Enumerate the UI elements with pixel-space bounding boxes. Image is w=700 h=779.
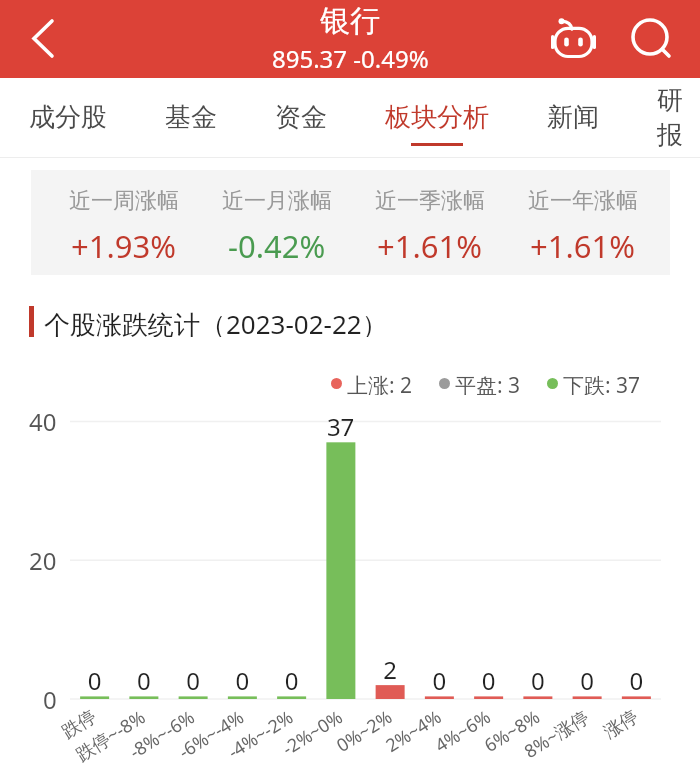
button[interactable]: 成分股 [0,78,136,157]
staticText: 成分股 [29,101,107,134]
button[interactable]: Back [0,0,78,78]
button[interactable]: 基金 [136,78,246,157]
staticText: 资金 [275,101,327,134]
button[interactable]: Search [620,7,680,67]
button[interactable]: 近一季涨幅 [353,170,506,275]
staticText: 上涨: 2 [347,371,413,395]
staticText: 近一季涨幅 [375,187,485,215]
staticText: +1.61% [530,225,635,267]
button[interactable]: 资金 [246,78,356,157]
staticText: 个股涨跌统计（2023-02-22） [44,306,388,337]
button[interactable]: 近一月涨幅 [200,170,353,275]
staticText: 近一周涨幅 [69,187,179,215]
button[interactable]: 研报 [628,78,700,157]
staticText: 近一月涨幅 [222,187,332,215]
staticText: 895.37 -0.49% [272,42,429,75]
staticText: -0.42% [228,225,326,267]
button[interactable]: 板块分析 [356,78,518,157]
staticText: +1.93% [71,225,176,267]
staticText: 近一年涨幅 [528,187,638,215]
staticText: 新闻 [547,101,599,134]
button[interactable]: 近一年涨幅 [506,170,659,275]
button[interactable]: 新闻 [518,78,628,157]
staticText: 平盘: 3 [455,371,521,395]
staticText: +1.61% [377,225,482,267]
button[interactable]: AI assistant [544,8,604,68]
staticText: 银行 [320,2,380,40]
button[interactable]: 近一周涨幅 [47,170,200,275]
staticText: 下跌: 37 [563,371,641,395]
staticText: 板块分析 [385,101,489,134]
staticText: 研报 [657,84,671,152]
staticText: 基金 [165,101,217,134]
